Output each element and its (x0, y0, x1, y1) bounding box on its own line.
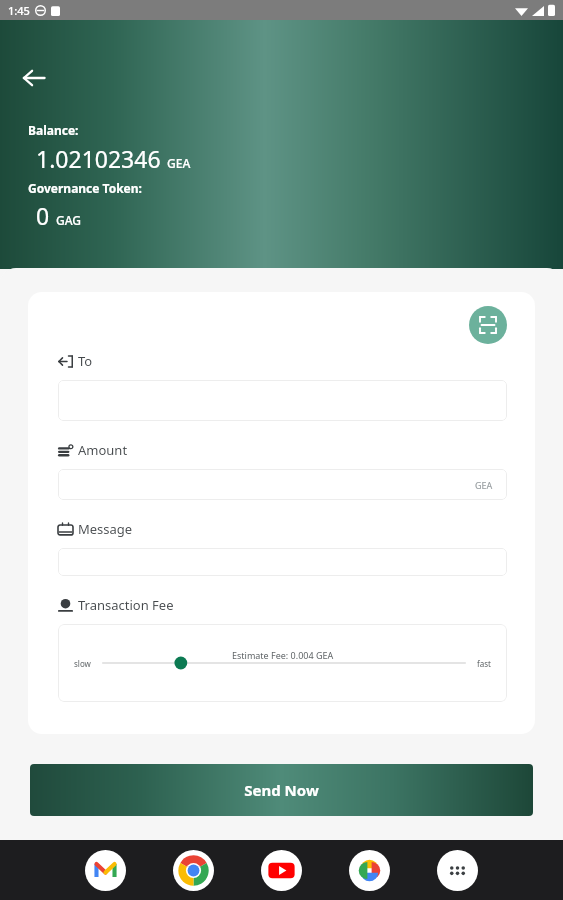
staticText: Message (78, 520, 133, 538)
staticText: 1:45 (8, 3, 30, 18)
button[interactable] (58, 548, 507, 576)
button[interactable]: Back (12, 56, 56, 100)
staticText: slow (74, 658, 91, 669)
staticText: Send Now (244, 780, 319, 800)
button[interactable]: Send Now (30, 764, 533, 816)
staticText: Amount (78, 441, 128, 459)
staticText: 0 (36, 200, 50, 231)
staticText: Transaction Fee (78, 596, 174, 614)
staticText: GEA (167, 155, 191, 171)
button[interactable]: Transaction fee slider (103, 651, 465, 675)
button[interactable]: Chrome (173, 850, 214, 891)
button[interactable]: YouTube (261, 850, 302, 891)
button[interactable]: Gmail (85, 850, 126, 891)
staticText: GEA (475, 479, 493, 491)
staticText: To (78, 352, 93, 370)
button[interactable]: All apps (437, 850, 478, 891)
staticText: Balance: (28, 122, 79, 138)
button[interactable]: Scan QR code (469, 306, 507, 344)
staticText: 1.02102346 (36, 143, 161, 174)
staticText: fast (477, 658, 491, 669)
button[interactable]: GEA (58, 469, 507, 500)
staticText: GAG (56, 212, 82, 228)
button[interactable]: Photos (349, 850, 390, 891)
staticText: Estimate Fee: 0.004 GEA (232, 649, 334, 661)
staticText: Governance Token: (28, 180, 142, 196)
button[interactable] (58, 380, 507, 421)
